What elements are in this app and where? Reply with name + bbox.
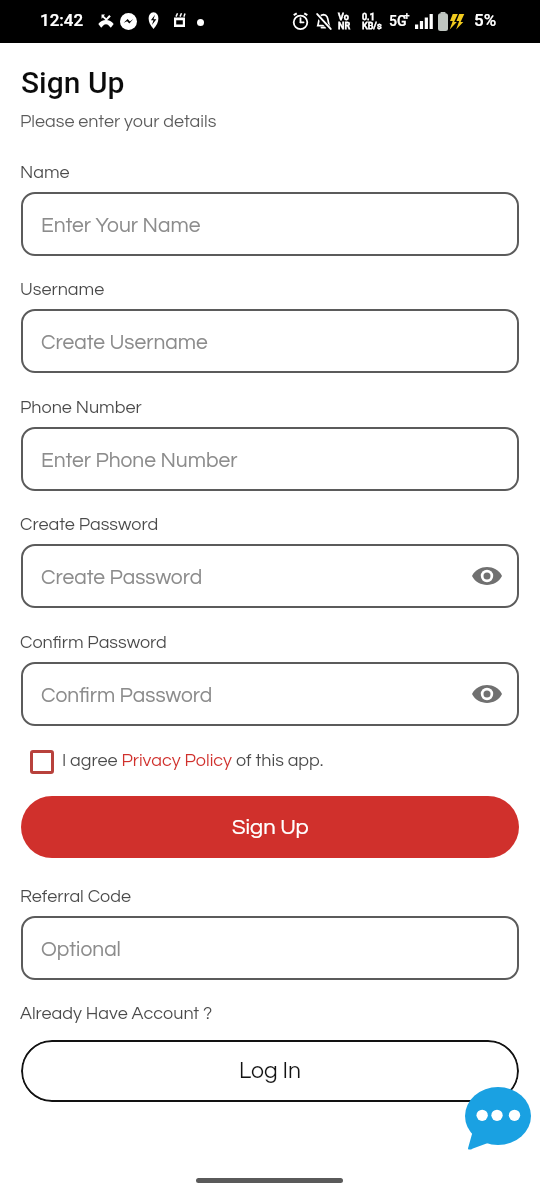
staticText: Referral Code (20, 887, 131, 906)
staticText: Vo NR (338, 12, 351, 31)
staticText: Already Have Account ? (20, 1004, 213, 1023)
staticText: Optional (41, 939, 121, 961)
staticText: Log In (239, 1059, 302, 1083)
staticText: + (404, 11, 410, 23)
staticText: Enter Your Name (41, 215, 201, 237)
staticText: Create Username (41, 332, 208, 354)
staticText: Sign Up (21, 65, 125, 100)
staticText: 5G (389, 13, 407, 29)
button[interactable]: Show password (470, 677, 504, 711)
staticText: Phone Number (20, 398, 142, 417)
button[interactable]: Sign Up (21, 796, 519, 858)
staticText: Name (20, 163, 70, 182)
button[interactable]: Log In (21, 1040, 519, 1102)
staticText: Enter Phone Number (41, 450, 238, 472)
button[interactable]: Confirm Password (21, 662, 519, 726)
button[interactable]: Create Username (21, 309, 519, 373)
button[interactable]: Enter Phone Number (21, 427, 519, 491)
button[interactable]: Create Password (21, 544, 519, 608)
staticText: Create Password (20, 515, 159, 534)
button[interactable]: I agree Privacy Policy of this app. (62, 751, 324, 770)
staticText: Confirm Password (41, 685, 213, 707)
staticText: Confirm Password (20, 633, 167, 652)
staticText: Create Password (41, 567, 203, 589)
staticText: 12:42 (40, 10, 84, 30)
staticText: Username (20, 280, 105, 299)
staticText: Sign Up (232, 816, 309, 839)
button[interactable]: Chat support (465, 1087, 531, 1150)
staticText: 0.1 KB/s (362, 12, 382, 31)
button[interactable]: Show password (470, 559, 504, 593)
button[interactable]: Optional (21, 916, 519, 980)
button[interactable]: Enter Your Name (21, 192, 519, 256)
staticText: 5% (474, 10, 497, 30)
staticText: Please enter your details (20, 112, 217, 131)
button[interactable]: Agree to privacy policy (30, 750, 54, 774)
